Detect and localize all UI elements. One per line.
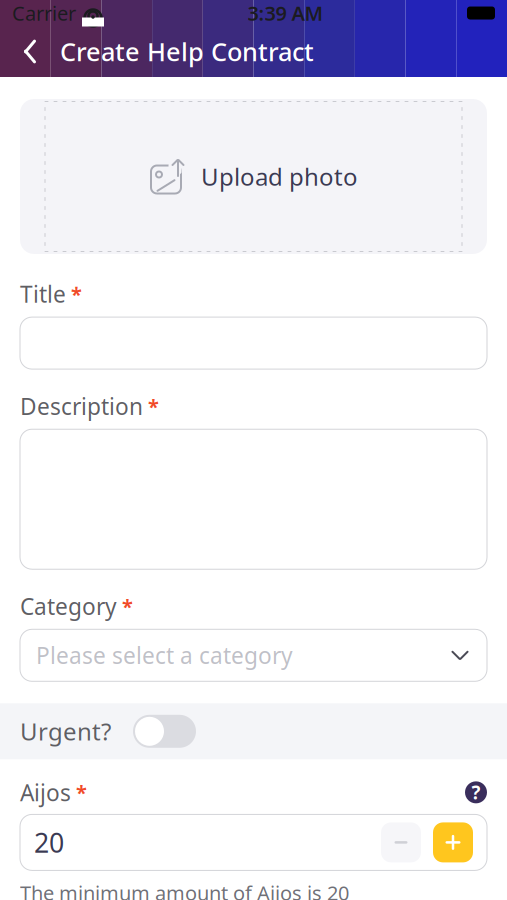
button[interactable] (20, 429, 487, 569)
button[interactable]: Please select a category (20, 629, 487, 681)
staticText: The minimum amount of Aijos is 20 (20, 879, 349, 900)
button[interactable]: Increase Aijos (433, 822, 473, 862)
staticText: Upload photo (201, 161, 358, 192)
staticText: Category (20, 591, 117, 621)
staticText: 3:39 AM (247, 0, 323, 26)
staticText: Description (20, 391, 143, 421)
staticText: Urgent? (20, 715, 111, 747)
button[interactable]: Help about Aijos (465, 780, 487, 805)
staticText: ? (471, 780, 480, 805)
staticText: * (148, 393, 159, 419)
staticText: Carrier (12, 0, 76, 26)
staticText: Create Help Contract (60, 35, 314, 68)
staticText: Aijos (20, 777, 71, 807)
button[interactable]: Upload photo (0, 77, 507, 254)
staticText: Please select a category (36, 640, 293, 670)
staticText: 20 (34, 825, 64, 860)
button[interactable]: Urgent? (0, 703, 507, 759)
button[interactable] (20, 317, 487, 369)
staticText: * (76, 779, 87, 806)
button[interactable]: Back (8, 29, 52, 73)
staticText: * (71, 281, 82, 307)
staticText: Title (20, 279, 66, 309)
staticText: * (122, 593, 133, 620)
button[interactable]: Decrease Aijos (381, 822, 421, 862)
